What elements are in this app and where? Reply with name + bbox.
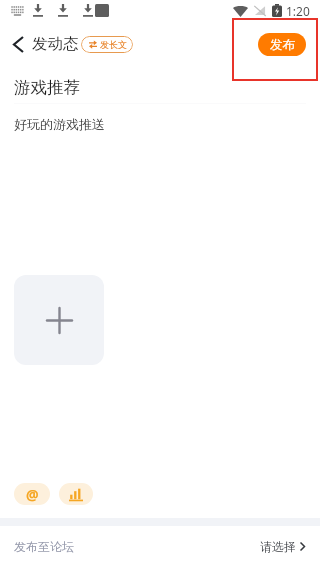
button[interactable]: 发长文 <box>81 36 133 53</box>
button[interactable]: Back <box>0 24 32 64</box>
staticText: 发布 <box>270 37 295 53</box>
button[interactable]: Mention <box>14 483 50 505</box>
staticText: 发动态 <box>32 34 79 54</box>
staticText: 请选择 <box>260 539 296 554</box>
staticText: 发布至论坛 <box>14 539 74 554</box>
button[interactable]: 发布 <box>258 33 306 56</box>
button[interactable]: Poll <box>59 483 93 505</box>
staticText: 1:20 <box>286 3 310 19</box>
staticText: 游戏推荐 <box>14 77 80 98</box>
button[interactable]: Add image <box>14 275 104 365</box>
button[interactable]: 发布至论坛 <box>0 526 320 569</box>
staticText: 发长文 <box>100 39 127 50</box>
staticText: 好玩的游戏推送 <box>14 116 105 132</box>
staticText: @ <box>26 485 39 504</box>
